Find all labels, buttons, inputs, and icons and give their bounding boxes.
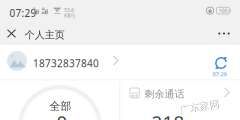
- staticText: 剩余通话: [144, 88, 184, 100]
- button[interactable]: More: [211, 22, 237, 45]
- staticText: 个人主页: [25, 28, 65, 41]
- staticText: 07:29: [213, 70, 227, 78]
- staticText: 100: [218, 7, 227, 14]
- staticText: 18732837840: [33, 56, 99, 70]
- staticText: 218: [151, 109, 184, 120]
- button[interactable]: 剩余通话: [120, 84, 240, 102]
- staticText: KB/S: [64, 13, 74, 19]
- staticText: 55.6: [64, 7, 74, 13]
- staticText: 广东家网: [179, 100, 219, 113]
- staticText: 广东家网: [179, 101, 219, 113]
- button[interactable]: Close: [0, 22, 23, 45]
- staticText: 全部: [50, 99, 72, 113]
- button[interactable]: Refresh: [213, 55, 230, 77]
- button[interactable]: 18732837840: [0, 45, 122, 79]
- staticText: 0: [56, 109, 67, 120]
- button[interactable]: 全部: [40, 99, 80, 113]
- staticText: 07:29: [9, 6, 36, 20]
